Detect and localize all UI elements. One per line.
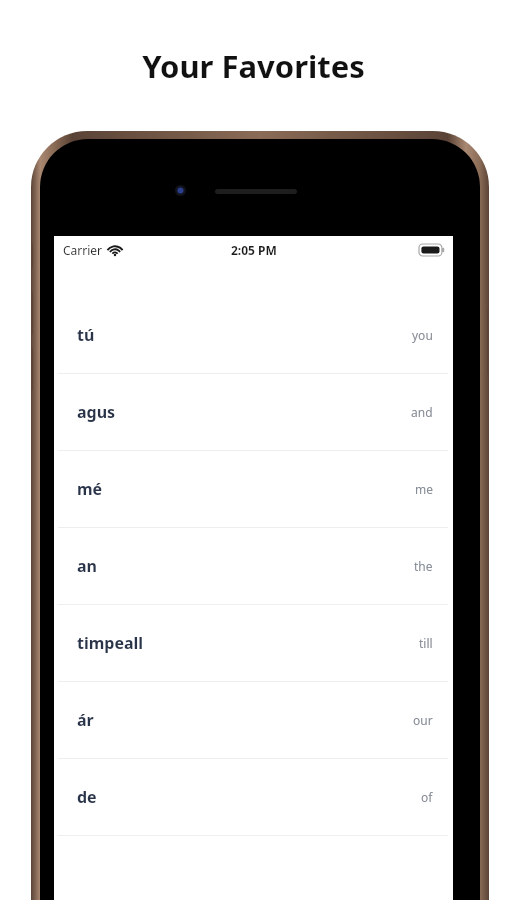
staticText: 2:05 PM (231, 242, 277, 258)
button[interactable]: timpeall (54, 605, 453, 681)
staticText: mé (77, 478, 103, 500)
staticText: and (411, 404, 433, 420)
staticText: an (77, 555, 97, 577)
staticText: the (414, 558, 433, 574)
staticText: till (419, 635, 433, 651)
staticText: de (77, 786, 97, 808)
staticText: you (412, 327, 433, 343)
button[interactable]: de (54, 759, 453, 835)
button[interactable]: agus (54, 374, 453, 450)
staticText: Carrier (63, 242, 103, 258)
staticText: of (421, 789, 433, 805)
staticText: timpeall (77, 632, 144, 654)
button[interactable]: mé (54, 451, 453, 527)
button[interactable]: tú (54, 297, 453, 373)
button[interactable]: an (54, 528, 453, 604)
staticText: tú (77, 324, 95, 346)
staticText: me (415, 481, 433, 497)
staticText: ár (77, 709, 94, 731)
staticText: agus (77, 401, 116, 423)
staticText: our (413, 712, 433, 728)
staticText: Your Favorites (0, 45, 507, 87)
button[interactable]: ár (54, 682, 453, 758)
